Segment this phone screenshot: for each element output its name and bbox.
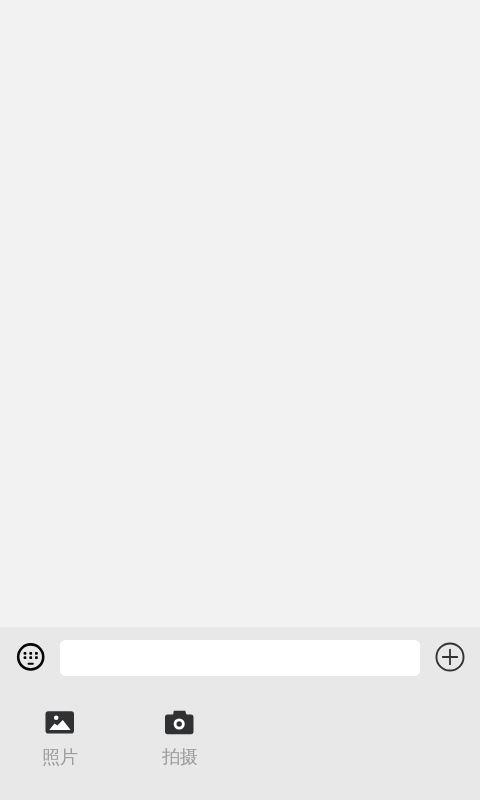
button[interactable]: Camera — [120, 687, 240, 800]
button[interactable]: Photos — [0, 687, 120, 800]
staticText: 照片 — [42, 746, 78, 769]
button[interactable]: More — [427, 634, 472, 679]
button[interactable]: Keyboard — [8, 634, 53, 679]
staticText: 拍摄 — [162, 746, 198, 769]
